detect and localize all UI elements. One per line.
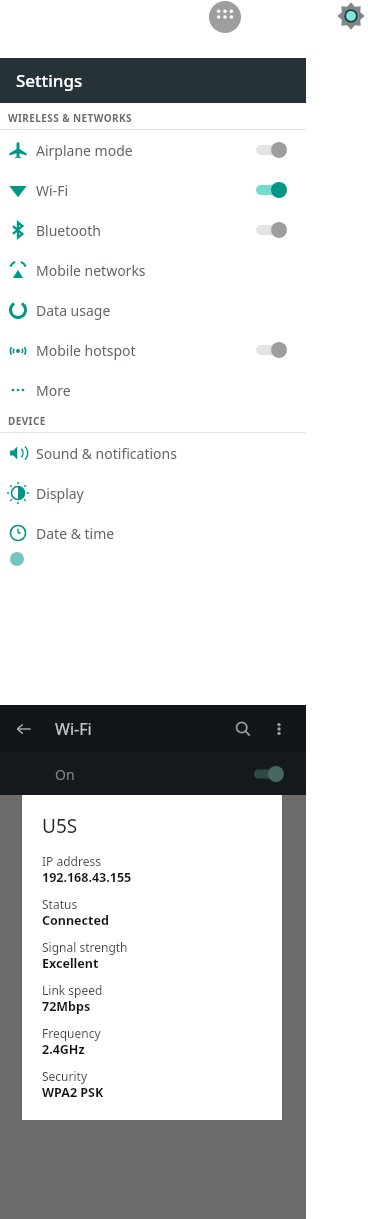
staticText: Wi-Fi: [36, 181, 69, 200]
staticText: Status: [42, 896, 78, 912]
staticText: Signal strength: [42, 939, 128, 955]
staticText: On: [55, 765, 75, 784]
staticText: More: [36, 381, 71, 400]
staticText: Connected: [42, 912, 109, 929]
staticText: Excellent: [42, 955, 99, 972]
button[interactable]: More options: [266, 716, 292, 742]
button[interactable]: Bluetooth: [0, 210, 306, 250]
button[interactable]: Mobile networks: [0, 250, 306, 290]
staticText: WPA2 PSK: [42, 1084, 104, 1101]
staticText: DEVICE: [8, 414, 46, 428]
staticText: Bluetooth: [36, 221, 101, 240]
staticText: Security: [42, 1068, 88, 1084]
staticText: U5S: [42, 813, 78, 839]
staticText: Data usage: [36, 301, 111, 320]
button[interactable]: Settings: [336, 1, 366, 31]
staticText: Mobile networks: [36, 261, 146, 280]
staticText: WIRELESS & NETWORKS: [8, 111, 132, 125]
button[interactable]: Back: [10, 715, 38, 743]
button[interactable]: More: [0, 370, 306, 410]
button[interactable]: Search: [230, 716, 256, 742]
staticText: Display: [36, 484, 84, 503]
staticText: Date & time: [36, 524, 115, 543]
staticText: 2.4GHz: [42, 1041, 85, 1058]
staticText: Sound & notifications: [36, 444, 177, 463]
staticText: 72Mbps: [42, 998, 91, 1015]
staticText: Wi-Fi: [55, 718, 92, 740]
staticText: Link speed: [42, 982, 103, 998]
button[interactable]: On: [0, 753, 306, 795]
button[interactable]: Data usage: [0, 290, 306, 330]
staticText: Mobile hotspot: [36, 341, 136, 360]
button[interactable]: Date & time: [0, 513, 306, 553]
button[interactable]: Mobile hotspot: [0, 330, 306, 370]
button[interactable]: Sound & notifications: [0, 433, 306, 473]
staticText: Airplane mode: [36, 141, 133, 160]
button[interactable]: Airplane mode: [0, 130, 306, 170]
staticText: Frequency: [42, 1025, 101, 1041]
staticText: IP address: [42, 853, 101, 869]
button[interactable]: Display: [0, 473, 306, 513]
button[interactable]: Wi-Fi: [0, 170, 306, 210]
staticText: 192.168.43.155: [42, 869, 132, 886]
button[interactable]: Apps: [209, 1, 241, 33]
staticText: Settings: [16, 69, 83, 92]
